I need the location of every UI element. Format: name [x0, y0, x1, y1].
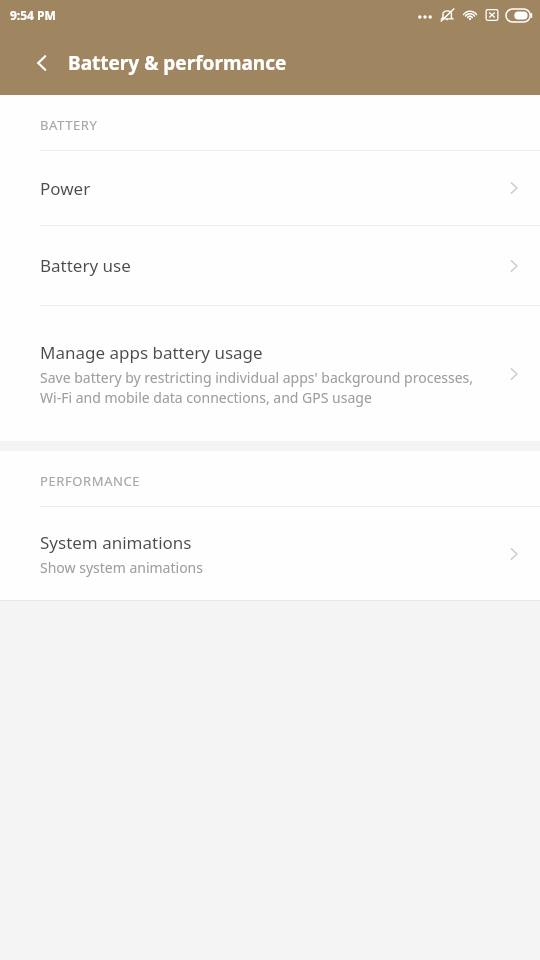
staticText: Power — [40, 177, 91, 200]
button[interactable]: Battery use — [0, 226, 540, 305]
staticText: 9:54 PM — [10, 7, 56, 23]
staticText: System animations — [40, 531, 192, 554]
button[interactable]: Back — [20, 41, 64, 85]
button[interactable]: Power — [0, 151, 540, 225]
staticText: Battery use — [40, 254, 131, 277]
staticText: PERFORMANCE — [40, 472, 141, 490]
staticText: Save battery by restricting individual a… — [40, 368, 496, 407]
staticText: BATTERY — [40, 116, 98, 134]
staticText: Show system animations — [40, 558, 203, 577]
staticText: Battery & performance — [68, 50, 287, 76]
button[interactable]: Manage apps battery usage — [0, 306, 540, 441]
button[interactable]: System animations — [0, 507, 540, 600]
staticText: Manage apps battery usage — [40, 341, 263, 364]
